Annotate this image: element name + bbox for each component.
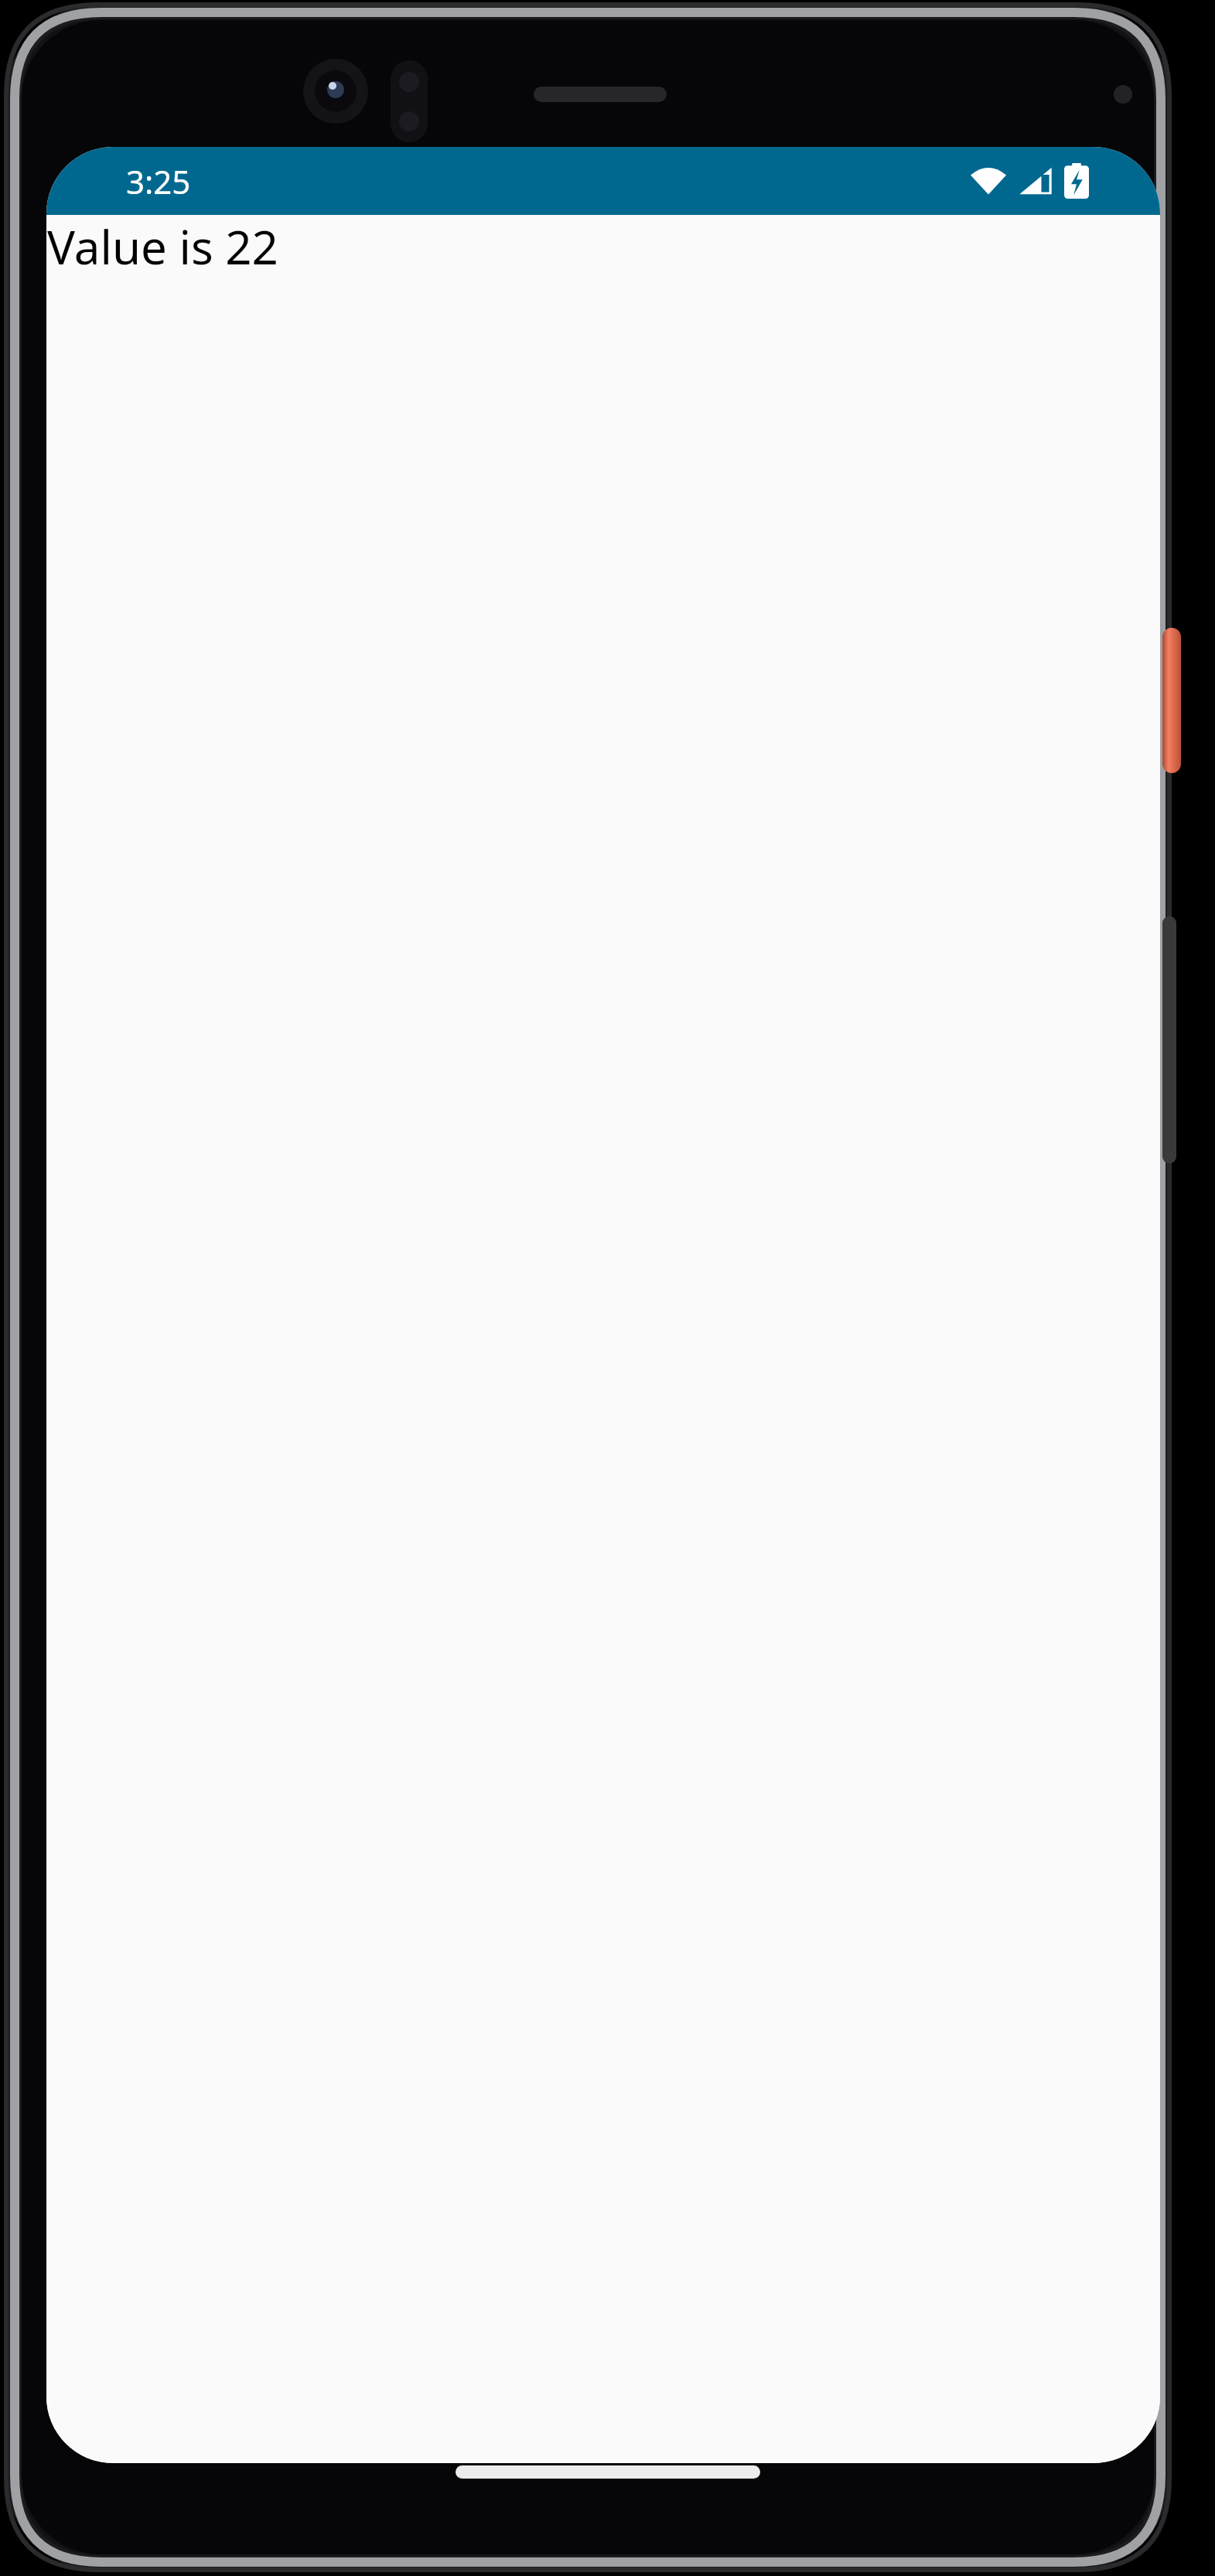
staticText: Value is 22	[47, 215, 278, 278]
staticText: 3:25	[126, 159, 191, 203]
